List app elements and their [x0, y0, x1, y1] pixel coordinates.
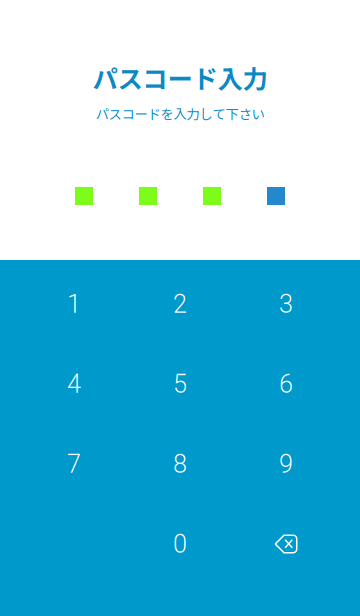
- button[interactable]: 9: [233, 424, 339, 504]
- button[interactable]: 7: [21, 424, 127, 504]
- staticText: 5: [173, 369, 187, 399]
- button[interactable]: 5: [127, 344, 233, 424]
- staticText: 1: [67, 289, 81, 319]
- button[interactable]: 1: [21, 264, 127, 344]
- button[interactable]: 2: [127, 264, 233, 344]
- staticText: 6: [279, 369, 293, 399]
- staticText: 2: [173, 289, 187, 319]
- staticText: 7: [67, 449, 81, 479]
- button[interactable]: Delete: [233, 504, 339, 584]
- staticText: 9: [279, 449, 293, 479]
- button[interactable]: 8: [127, 424, 233, 504]
- staticText: 8: [173, 449, 187, 479]
- staticText: パスコード入力: [92, 59, 267, 96]
- staticText: パスコードを入力して下さい: [95, 104, 264, 123]
- button[interactable]: 6: [233, 344, 339, 424]
- staticText: 3: [279, 289, 293, 319]
- staticText: 0: [173, 529, 187, 559]
- button[interactable]: 3: [233, 264, 339, 344]
- staticText: 4: [67, 369, 81, 399]
- button[interactable]: 0: [127, 504, 233, 584]
- button[interactable]: 4: [21, 344, 127, 424]
